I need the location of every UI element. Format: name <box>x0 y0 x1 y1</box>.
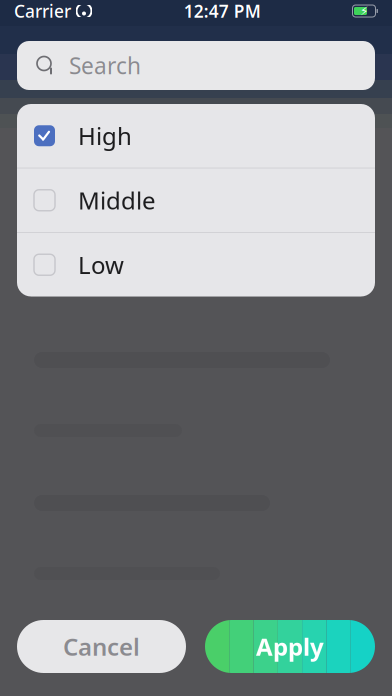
staticText: Search <box>69 50 141 80</box>
staticText: Cancel <box>63 631 140 662</box>
button[interactable]: Low <box>17 233 375 296</box>
button[interactable]: Cancel <box>17 620 186 673</box>
staticText: 12:47 PM <box>184 0 261 22</box>
staticText: Middle <box>78 184 156 216</box>
staticText: Carrier <box>14 0 71 22</box>
button[interactable]: Search <box>17 41 375 90</box>
button[interactable]: Apply <box>205 620 375 673</box>
button[interactable]: Middle <box>17 168 375 232</box>
staticText: Apply <box>256 631 324 662</box>
staticText: High <box>78 120 132 152</box>
staticText: Low <box>78 249 124 281</box>
staticText: ⚡︎ <box>360 4 368 18</box>
button[interactable]: High <box>17 104 375 167</box>
